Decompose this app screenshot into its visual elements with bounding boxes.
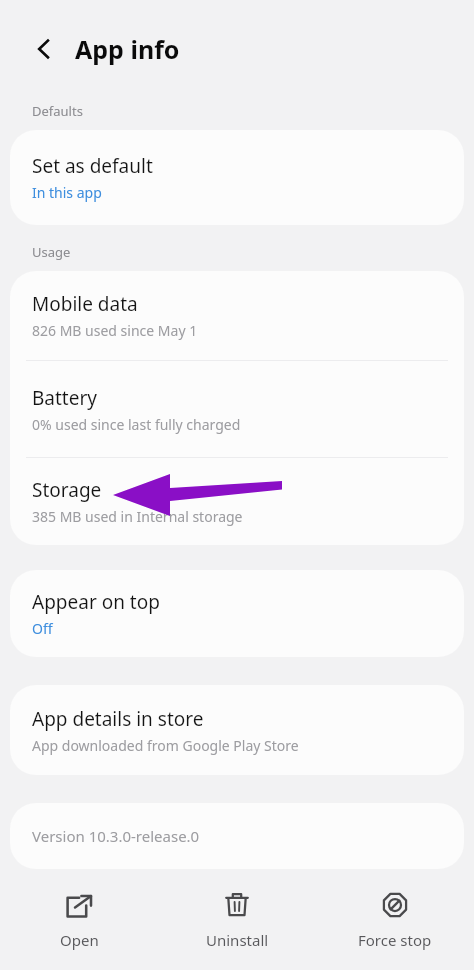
button[interactable]: Appear on top	[10, 570, 464, 657]
staticText: Set as default	[32, 153, 153, 179]
button[interactable]: Storage	[10, 458, 464, 545]
staticText: Battery	[32, 385, 97, 411]
staticText: Version 10.3.0-release.0	[32, 826, 200, 846]
staticText: 826 MB used since May 1	[32, 321, 198, 340]
button[interactable]: Force stop	[316, 869, 474, 970]
staticText: Open	[60, 930, 99, 950]
staticText: Uninstall	[206, 930, 269, 950]
button[interactable]: Back	[24, 29, 64, 69]
button[interactable]: App details in store	[10, 685, 464, 775]
staticText: Off	[32, 619, 53, 638]
button[interactable]: Set as default	[10, 130, 464, 225]
staticText: 385 MB used in Internal storage	[32, 507, 243, 526]
button[interactable]: Mobile data	[10, 271, 464, 360]
staticText: Force stop	[358, 930, 432, 950]
staticText: Defaults	[32, 102, 83, 120]
staticText: App downloaded from Google Play Store	[32, 736, 299, 755]
staticText: App info	[75, 32, 180, 66]
button[interactable]: Open	[0, 869, 158, 970]
staticText: Mobile data	[32, 291, 138, 317]
staticText: App details in store	[32, 706, 204, 732]
staticText: Appear on top	[32, 589, 160, 615]
staticText: 0% used since last fully charged	[32, 415, 241, 434]
button[interactable]: Battery	[10, 361, 464, 457]
staticText: In this app	[32, 183, 102, 202]
button[interactable]: Uninstall	[158, 869, 316, 970]
staticText: Storage	[32, 477, 102, 503]
staticText: Usage	[32, 243, 71, 261]
